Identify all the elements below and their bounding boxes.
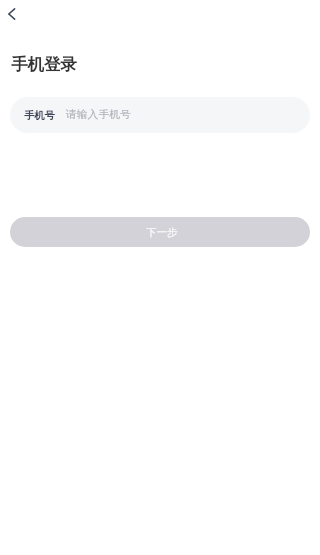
button[interactable]: Back <box>0 0 28 28</box>
button[interactable]: 手机号 <box>10 97 310 133</box>
button[interactable]: 下一步 <box>10 217 310 247</box>
staticText: 下一步 <box>146 226 178 239</box>
staticText: 请输入手机号 <box>66 108 131 122</box>
staticText: 手机号 <box>24 109 55 122</box>
staticText: 手机登录 <box>11 54 77 75</box>
